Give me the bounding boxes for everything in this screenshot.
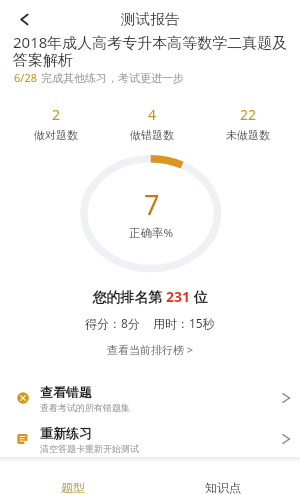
staticText: 重新练习 (40, 425, 92, 441)
staticText: 7 (144, 186, 160, 223)
button[interactable]: Back (14, 9, 34, 29)
staticText: 22 (240, 105, 257, 124)
staticText: 查看考试的所有错题集 (40, 402, 130, 413)
staticText: 6/28 (14, 70, 37, 85)
other: 查看错题 (281, 391, 295, 405)
staticText: 清空答题卡重新开始测试 (40, 443, 139, 454)
staticText: 查看错题 (40, 384, 92, 400)
button[interactable]: 查看当前排行榜 > (101, 340, 200, 359)
staticText: 完成其他练习，考试更进一步 (41, 71, 184, 85)
button[interactable]: 题型 (0, 463, 150, 495)
staticText: 正确率% (129, 225, 174, 241)
staticText: 测试报告 (121, 10, 180, 28)
staticText: 未做题数 (226, 128, 270, 142)
staticText: 您的排名第 231 位 (0, 287, 300, 306)
staticText: 用时：15秒 (153, 315, 215, 331)
staticText: 4 (148, 105, 157, 124)
staticText: 做错题数 (130, 128, 174, 142)
staticText: 得分：8分 (85, 315, 140, 331)
button[interactable]: 重新练习 (0, 419, 300, 460)
button[interactable]: 查看错题 (0, 378, 300, 419)
staticText: 题型 (61, 480, 85, 495)
staticText: 2 (52, 105, 61, 124)
button[interactable]: 知识点 (150, 463, 300, 495)
staticText: 2018年成人高考专升本高等数学二真题及答案解析 (13, 32, 292, 70)
staticText: 查看当前排行榜 > (107, 342, 194, 357)
staticText: 做对题数 (34, 128, 78, 142)
other: 重新练习 (281, 432, 295, 446)
staticText: 知识点 (205, 480, 241, 495)
